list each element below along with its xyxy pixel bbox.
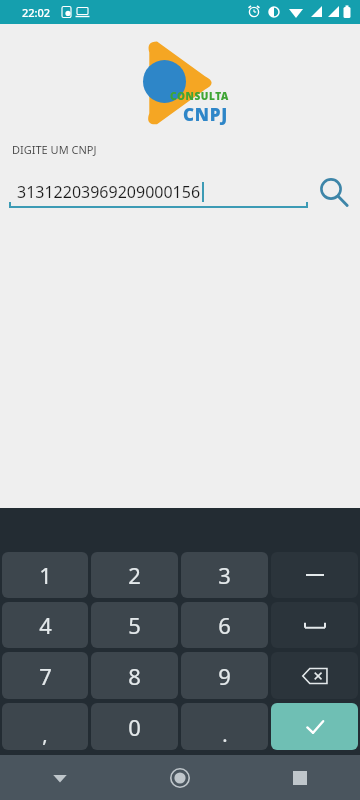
button[interactable]: 9 <box>181 652 268 699</box>
staticText: DIGITE UM CNPJ <box>12 142 97 157</box>
button[interactable]: 2 <box>91 552 178 598</box>
button[interactable]: Ocultar teclado <box>0 755 120 800</box>
button[interactable]: 7 <box>2 652 88 699</box>
staticText: 7 <box>39 661 52 691</box>
staticText: 4 <box>39 610 52 640</box>
button[interactable]: Buscar <box>308 166 360 218</box>
staticText: 3 <box>218 560 231 590</box>
button[interactable]: Apagar <box>271 652 358 699</box>
button[interactable]: 31312203969209000156 <box>9 176 308 208</box>
button[interactable]: 4 <box>2 602 88 648</box>
staticText: . <box>222 721 228 748</box>
button[interactable]: 5 <box>91 602 178 648</box>
staticText: 6 <box>218 610 231 640</box>
button[interactable]: , <box>2 703 88 750</box>
staticText: 2 <box>128 560 141 590</box>
button[interactable]: 0 <box>91 703 178 750</box>
button[interactable]: 8 <box>91 652 178 699</box>
staticText: CONSULTA <box>170 89 229 103</box>
staticText: CNPJ <box>183 103 229 126</box>
button[interactable]: 6 <box>181 602 268 648</box>
button[interactable]: . <box>181 703 268 750</box>
button[interactable]: 1 <box>2 552 88 598</box>
staticText: 0 <box>128 712 141 742</box>
button[interactable]: Confirmar <box>271 703 358 750</box>
staticText: 22:02 <box>22 5 51 20</box>
staticText: 8 <box>128 661 141 691</box>
staticText: 31312203969209000156 <box>17 181 201 203</box>
button[interactable]: Menos <box>271 552 358 598</box>
button[interactable]: 3 <box>181 552 268 598</box>
button[interactable]: Espaço <box>271 602 358 648</box>
button[interactable]: Início <box>120 755 240 800</box>
staticText: 9 <box>218 661 231 691</box>
staticText: , <box>42 721 48 748</box>
staticText: 1 <box>39 560 52 590</box>
staticText: 5 <box>128 610 141 640</box>
button[interactable]: Recentes <box>240 755 360 800</box>
